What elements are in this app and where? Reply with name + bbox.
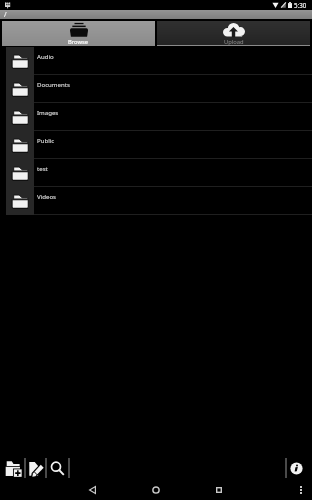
staticText: test xyxy=(37,164,48,172)
staticText: Documents xyxy=(37,80,70,88)
button[interactable]: Rename xyxy=(27,456,44,480)
button[interactable]: Search xyxy=(49,456,66,480)
staticText: Public xyxy=(37,136,55,144)
staticText: Images xyxy=(37,108,59,116)
button[interactable]: Info xyxy=(289,456,304,480)
button[interactable]: More options xyxy=(296,482,306,498)
button[interactable]: Recents xyxy=(205,482,233,498)
button[interactable]: Home xyxy=(142,482,170,498)
button[interactable]: test xyxy=(0,159,312,187)
staticText: Audio xyxy=(37,52,54,60)
button[interactable]: Upload xyxy=(157,21,310,46)
staticText: Videos xyxy=(37,192,57,200)
staticText: Browse xyxy=(68,38,89,46)
button[interactable]: Videos xyxy=(0,187,312,215)
button[interactable]: Documents xyxy=(0,75,312,103)
button[interactable]: Images xyxy=(0,103,312,131)
button[interactable]: Audio xyxy=(0,47,312,75)
staticText: / xyxy=(4,10,7,19)
staticText: Upload xyxy=(224,38,244,46)
button[interactable]: Back xyxy=(78,482,106,498)
staticText: 5:30 xyxy=(294,1,307,9)
button[interactable]: Public xyxy=(0,131,312,159)
button[interactable]: Browse xyxy=(2,21,155,46)
button[interactable]: New folder xyxy=(4,456,23,480)
